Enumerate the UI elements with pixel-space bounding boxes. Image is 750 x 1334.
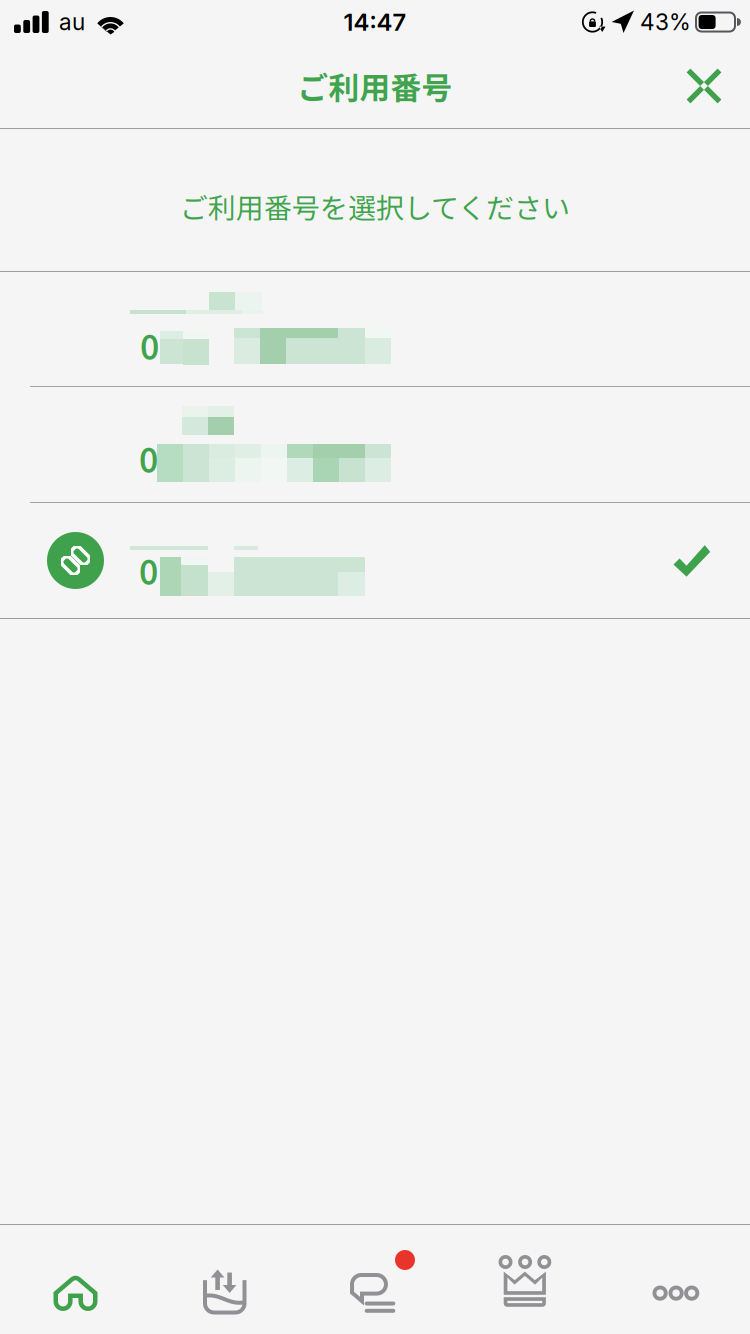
staticText: ご利用番号 (297, 64, 452, 108)
button[interactable]: 閉じる (668, 50, 740, 122)
staticText: au (59, 8, 85, 36)
button[interactable]: ご利用番号 3 (選択中) (0, 503, 750, 618)
button[interactable]: メッセージ (300, 1225, 450, 1334)
button[interactable]: ご利用番号 2 (0, 387, 750, 502)
staticText: 0 (139, 434, 158, 482)
button[interactable]: 特典 (450, 1225, 600, 1334)
staticText: ご利用番号を選択してください (180, 186, 570, 226)
button[interactable]: ホーム (0, 1225, 150, 1334)
staticText: 43% (640, 8, 691, 36)
staticText: 14:47 (343, 7, 406, 36)
staticText: 0 (139, 546, 158, 594)
button[interactable]: データ利用量 (150, 1225, 300, 1334)
staticText: 0 (140, 321, 159, 369)
button[interactable]: その他 (600, 1225, 750, 1334)
button[interactable]: ご利用番号 1 (0, 272, 750, 386)
